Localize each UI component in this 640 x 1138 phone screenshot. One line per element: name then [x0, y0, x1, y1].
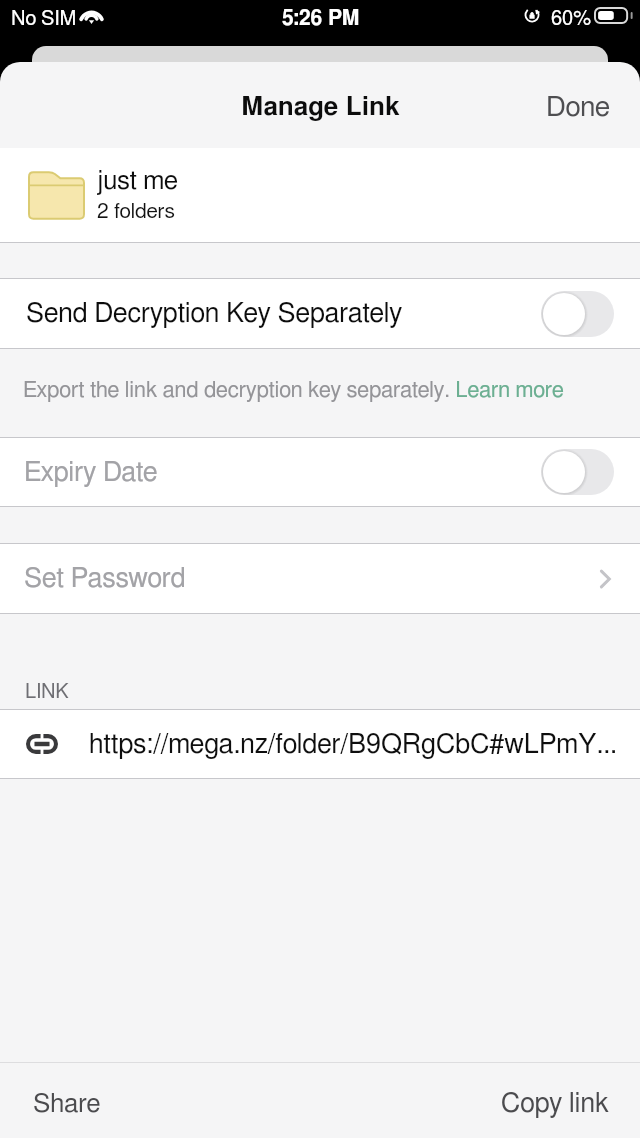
other: Link — [26, 729, 58, 759]
button[interactable]: Toggle — [541, 291, 614, 337]
button[interactable]: Send Decryption Key Separately — [0, 279, 640, 348]
staticText: Copy link — [501, 1090, 609, 1117]
other: Folder — [29, 171, 84, 220]
other: Battery 60 percent — [594, 7, 633, 24]
button[interactable]: Folder — [0, 148, 640, 242]
button[interactable]: Expiry Date — [0, 438, 640, 506]
staticText: Manage Link — [241, 94, 400, 120]
staticText: 60% — [551, 9, 592, 29]
button[interactable]: Copy link — [470, 1072, 640, 1135]
staticText: Share — [33, 1091, 101, 1117]
button[interactable]: Share — [0, 1073, 134, 1135]
staticText: 2 folders — [97, 201, 175, 222]
other: Open — [596, 565, 614, 593]
staticText: just me — [97, 168, 178, 194]
button[interactable]: Set Password — [0, 544, 640, 613]
staticText: No SIM — [11, 9, 77, 29]
staticText: LINK — [25, 682, 69, 702]
button[interactable]: Link — [0, 710, 640, 778]
staticText: Done — [546, 94, 610, 122]
staticText: Set Password — [24, 565, 594, 592]
staticText: Send Decryption Key Separately — [26, 300, 541, 327]
staticText: Expiry Date — [24, 459, 539, 486]
staticText: Export the link and decryption key separ… — [23, 379, 564, 401]
button[interactable]: Toggle — [541, 449, 614, 495]
other: Wi-Fi — [79, 6, 104, 24]
button[interactable]: Done — [516, 80, 640, 136]
other: Rotation lock — [525, 7, 541, 23]
staticText: https://mega.nz/folder/B9QRgCbC#wLPmY... — [89, 731, 617, 758]
staticText: 5:26 PM — [282, 8, 360, 29]
